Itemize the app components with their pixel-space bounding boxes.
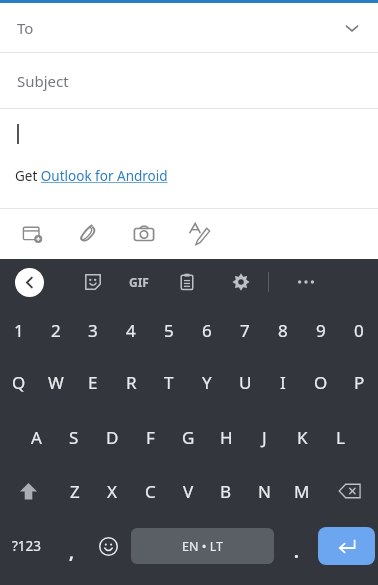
- button[interactable]: R: [112, 355, 150, 410]
- button[interactable]: F: [131, 410, 169, 464]
- button[interactable]: Get Outlook for Android: [0, 109, 378, 208]
- staticText: O: [314, 371, 328, 394]
- staticText: C: [145, 480, 156, 503]
- button[interactable]: Q: [0, 355, 37, 410]
- button[interactable]: Stickers: [76, 265, 110, 299]
- button[interactable]: 2: [37, 305, 74, 355]
- staticText: E: [88, 371, 98, 394]
- staticText: 0: [354, 319, 364, 342]
- button[interactable]: Expand recipients: [338, 14, 366, 42]
- button[interactable]: J: [245, 410, 283, 464]
- button[interactable]: Shift: [0, 464, 56, 518]
- staticText: J: [262, 426, 267, 449]
- button[interactable]: S: [55, 410, 93, 464]
- button[interactable]: 3: [74, 305, 112, 355]
- staticText: L: [336, 426, 345, 449]
- staticText: F: [146, 426, 155, 449]
- button[interactable]: Emoji: [90, 518, 127, 574]
- button[interactable]: W: [37, 355, 74, 410]
- button[interactable]: Settings: [224, 265, 258, 299]
- staticText: 7: [240, 319, 250, 342]
- button[interactable]: U: [226, 355, 264, 410]
- button[interactable]: T: [150, 355, 188, 410]
- button[interactable]: K: [283, 410, 321, 464]
- staticText: 6: [202, 319, 212, 342]
- button[interactable]: GIF: [122, 265, 156, 299]
- staticText: V: [183, 480, 194, 503]
- button[interactable]: To: [0, 3, 378, 52]
- button[interactable]: 4: [112, 305, 150, 355]
- staticText: S: [69, 426, 79, 449]
- button[interactable]: X: [93, 464, 131, 518]
- button[interactable]: H: [207, 410, 245, 464]
- staticText: R: [126, 371, 137, 394]
- button[interactable]: Camera: [120, 210, 168, 258]
- button[interactable]: 8: [264, 305, 302, 355]
- button[interactable]: Z: [56, 464, 93, 518]
- button[interactable]: E: [74, 355, 112, 410]
- button[interactable]: Backspace: [321, 464, 378, 518]
- staticText: EN • LT: [182, 538, 223, 555]
- staticText: A: [31, 426, 42, 449]
- button[interactable]: 9: [302, 305, 340, 355]
- staticText: 5: [164, 319, 174, 342]
- button[interactable]: EN • LT: [131, 528, 274, 564]
- button[interactable]: ,: [53, 518, 90, 574]
- staticText: To: [17, 18, 34, 38]
- button[interactable]: More options: [288, 264, 324, 300]
- button[interactable]: B: [207, 464, 245, 518]
- button[interactable]: Back: [15, 268, 44, 297]
- staticText: U: [239, 371, 252, 394]
- button[interactable]: O: [302, 355, 340, 410]
- button[interactable]: 0: [340, 305, 378, 355]
- button[interactable]: Clipboard: [170, 265, 204, 299]
- staticText: K: [297, 426, 308, 449]
- button[interactable]: ?123: [0, 518, 53, 574]
- staticText: M: [294, 480, 310, 503]
- button[interactable]: 6: [188, 305, 226, 355]
- staticText: W: [48, 371, 64, 394]
- staticText: D: [106, 426, 119, 449]
- button[interactable]: Enter: [318, 527, 375, 565]
- button[interactable]: C: [131, 464, 169, 518]
- button[interactable]: A: [18, 410, 55, 464]
- staticText: 4: [126, 319, 136, 342]
- staticText: ,: [69, 541, 74, 564]
- staticText: Q: [12, 371, 26, 394]
- staticText: 3: [88, 319, 98, 342]
- button[interactable]: .: [278, 518, 315, 574]
- button[interactable]: D: [93, 410, 131, 464]
- staticText: G: [182, 426, 195, 449]
- staticText: T: [164, 371, 174, 394]
- button[interactable]: P: [340, 355, 378, 410]
- button[interactable]: I: [264, 355, 302, 410]
- button[interactable]: 7: [226, 305, 264, 355]
- staticText: H: [220, 426, 233, 449]
- staticText: Subject: [17, 71, 69, 91]
- staticText: ?123: [12, 537, 42, 555]
- staticText: X: [107, 480, 117, 503]
- staticText: 2: [51, 319, 61, 342]
- staticText: P: [354, 371, 365, 394]
- staticText: .: [294, 540, 299, 563]
- button[interactable]: Subject: [0, 53, 378, 108]
- button[interactable]: Format text: [176, 210, 224, 258]
- staticText: B: [220, 480, 232, 503]
- staticText: GIF: [129, 274, 149, 290]
- button[interactable]: V: [169, 464, 207, 518]
- button[interactable]: Insert file: [8, 210, 56, 258]
- button[interactable]: N: [245, 464, 283, 518]
- button[interactable]: G: [169, 410, 207, 464]
- button[interactable]: M: [283, 464, 321, 518]
- staticText: I: [280, 371, 286, 394]
- staticText: 9: [316, 319, 326, 342]
- staticText: Y: [202, 371, 212, 394]
- button[interactable]: L: [321, 410, 359, 464]
- staticText: 8: [278, 319, 288, 342]
- button[interactable]: 1: [0, 305, 37, 355]
- button[interactable]: Attach: [64, 210, 112, 258]
- staticText: 1: [14, 319, 24, 342]
- staticText: Get Outlook for Android: [15, 167, 168, 185]
- button[interactable]: 5: [150, 305, 188, 355]
- button[interactable]: Y: [188, 355, 226, 410]
